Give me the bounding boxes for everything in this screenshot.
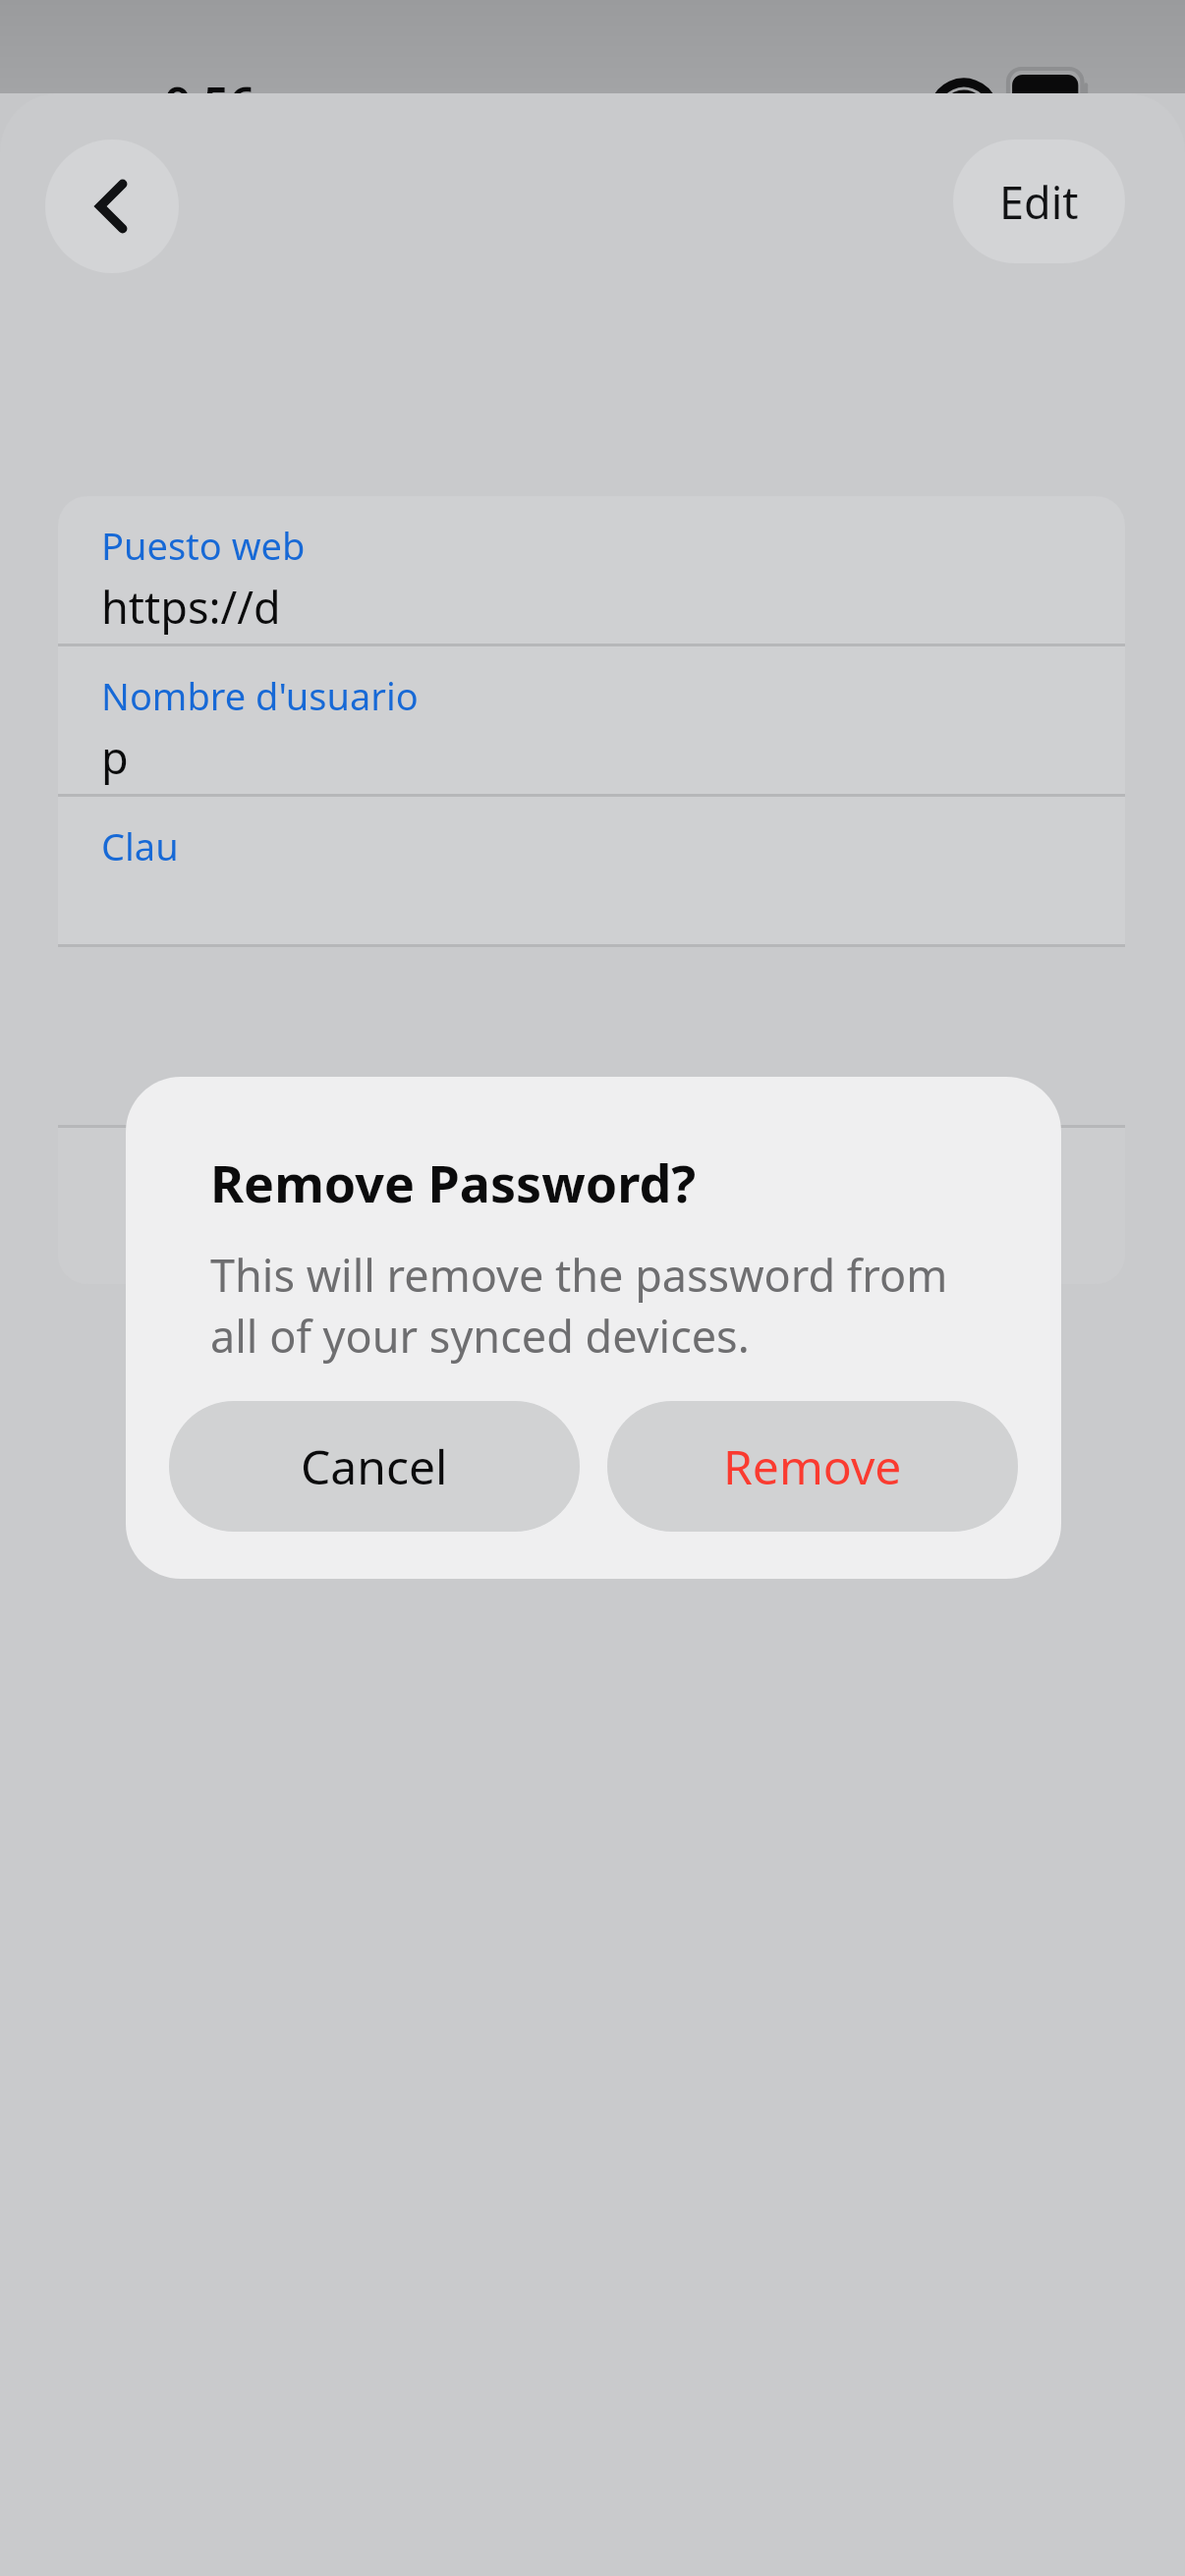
staticText: Remove [723,1434,902,1498]
staticText: Edit [999,172,1079,232]
staticText: Clau [101,820,179,871]
button[interactable]: Puesto web [58,496,1125,644]
button[interactable]: Edit [953,140,1125,263]
staticText: Puesto web [101,520,306,571]
button[interactable]: Back [45,140,179,273]
button[interactable]: Nombre d'usuario [58,646,1125,794]
button[interactable]: Clau [58,797,1125,944]
staticText: https://d [101,577,281,637]
staticText: Remove Password? [210,1148,697,1217]
staticText: Nombre d'usuario [101,670,419,721]
button[interactable]: Cancel [169,1401,580,1532]
staticText: 9:56 [165,73,255,135]
button[interactable]: Remove [607,1401,1018,1532]
staticText: p [101,727,129,787]
staticText: This will remove the password from all o… [210,1245,948,1366]
staticText: Cancel [301,1434,448,1498]
